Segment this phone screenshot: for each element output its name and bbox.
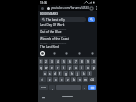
button[interactable]: 6 bbox=[67, 59, 72, 64]
button[interactable]: 7 bbox=[73, 59, 78, 64]
staticText: y bbox=[69, 66, 71, 70]
staticText: g bbox=[65, 72, 67, 76]
button[interactable]: Brave Rewards bbox=[40, 51, 45, 56]
button[interactable]: f bbox=[58, 71, 62, 76]
button[interactable]: i bbox=[79, 65, 84, 70]
staticText: 3 bbox=[51, 60, 53, 64]
staticText: Wizards of the Coast bbox=[40, 37, 69, 41]
button[interactable]: Search bbox=[88, 17, 95, 22]
staticText: Last Day Of Work bbox=[40, 23, 65, 27]
staticText: i bbox=[81, 66, 82, 70]
button[interactable]: j bbox=[75, 71, 80, 76]
button[interactable]: r bbox=[55, 65, 60, 70]
button[interactable]: q bbox=[39, 65, 43, 70]
button[interactable]: u bbox=[73, 65, 78, 70]
button[interactable]: Hide keyboard bbox=[42, 96, 45, 99]
button[interactable]: k bbox=[81, 71, 86, 76]
button[interactable]: 1 bbox=[39, 59, 43, 64]
button[interactable]: Tabs bbox=[89, 6, 93, 10]
staticText: The best of ly bbox=[46, 18, 65, 22]
button[interactable]: The best of ly bbox=[40, 17, 86, 22]
staticText: Indiwe — Development bbox=[40, 34, 67, 37]
button[interactable]: y bbox=[67, 65, 72, 70]
button[interactable]: The Last Kind bbox=[38, 44, 97, 49]
staticText: 5 bbox=[63, 60, 65, 64]
staticText: 0 bbox=[93, 60, 95, 64]
button[interactable]: , bbox=[49, 85, 55, 90]
staticText: m bbox=[84, 78, 87, 82]
button[interactable]: o bbox=[85, 65, 90, 70]
button[interactable]: Last Day Of Work bbox=[38, 23, 97, 30]
button[interactable]: 3 bbox=[49, 59, 54, 64]
staticText: The Last Kind bbox=[40, 45, 59, 49]
staticText: Indiwe — Development bbox=[40, 27, 67, 30]
staticText: k bbox=[83, 72, 85, 76]
button[interactable]: Share bbox=[90, 51, 95, 56]
staticText: p bbox=[93, 66, 95, 70]
button[interactable]: ⇧ bbox=[39, 77, 46, 82]
button[interactable]: l bbox=[87, 71, 92, 76]
staticText: u bbox=[75, 66, 77, 70]
staticText: b bbox=[73, 78, 75, 82]
staticText: 9 bbox=[87, 60, 89, 64]
button[interactable]: Enter bbox=[88, 85, 96, 90]
staticText: e bbox=[51, 66, 53, 70]
button[interactable]: Wizards of the Coast bbox=[38, 37, 97, 44]
staticText: l bbox=[89, 72, 90, 76]
staticText: q bbox=[40, 66, 42, 70]
button[interactable]: 9 bbox=[85, 59, 90, 64]
button[interactable]: c bbox=[59, 77, 64, 82]
staticText: r bbox=[57, 66, 59, 70]
staticText: x bbox=[55, 78, 57, 82]
button[interactable]: m bbox=[83, 77, 88, 82]
button[interactable]: . bbox=[82, 85, 87, 90]
button[interactable]: a bbox=[43, 71, 47, 76]
button[interactable]: s bbox=[48, 71, 52, 76]
staticText: youtube.com/forums/4533 bbox=[51, 6, 89, 10]
staticText: ⇧ bbox=[41, 78, 44, 81]
button[interactable]: ⌫ bbox=[89, 77, 96, 82]
staticText: . bbox=[84, 86, 85, 90]
button[interactable]: g bbox=[63, 71, 68, 76]
staticText: ?123 bbox=[41, 86, 46, 89]
staticText: 7 bbox=[75, 60, 77, 64]
staticText: c bbox=[61, 78, 63, 82]
staticText: ⌫ bbox=[90, 78, 95, 81]
button[interactable]: 0 bbox=[91, 59, 96, 64]
button[interactable]: 8 bbox=[79, 59, 84, 64]
button[interactable]: Bookmarks bbox=[77, 51, 82, 56]
staticText: 18:06 bbox=[40, 1, 48, 5]
button[interactable]: Forward bbox=[64, 51, 69, 56]
button[interactable]: z bbox=[47, 77, 52, 82]
button[interactable]: 2 bbox=[44, 59, 48, 64]
button[interactable]: p bbox=[91, 65, 96, 70]
button[interactable]: h bbox=[69, 71, 74, 76]
button[interactable]: x bbox=[53, 77, 58, 82]
button[interactable]: Out of the Blue bbox=[38, 30, 97, 37]
staticText: 4 bbox=[57, 60, 59, 64]
button[interactable]: ?123 bbox=[39, 85, 48, 90]
button[interactable]: Shields bbox=[40, 6, 44, 10]
staticText: z bbox=[49, 78, 51, 82]
staticText: 8 bbox=[81, 60, 83, 64]
button[interactable]: t bbox=[61, 65, 66, 70]
button[interactable]: b bbox=[71, 77, 76, 82]
button[interactable]: e bbox=[49, 65, 54, 70]
staticText: w bbox=[45, 66, 48, 70]
staticText: 6 bbox=[69, 60, 71, 64]
button[interactable]: w bbox=[44, 65, 48, 70]
button[interactable]: More options bbox=[95, 6, 97, 10]
button[interactable]: 4 bbox=[55, 59, 60, 64]
button[interactable]: Back bbox=[52, 51, 57, 56]
staticText: s bbox=[49, 72, 51, 76]
staticText: t bbox=[63, 66, 65, 70]
staticText: 1 bbox=[40, 60, 42, 64]
button[interactable]: n bbox=[77, 77, 82, 82]
button[interactable]: d bbox=[53, 71, 57, 76]
button[interactable]: 5 bbox=[61, 59, 66, 64]
button[interactable]: v bbox=[65, 77, 70, 82]
button[interactable]: Site information bbox=[46, 6, 50, 10]
staticText: j bbox=[77, 72, 78, 76]
staticText: d bbox=[54, 72, 56, 76]
